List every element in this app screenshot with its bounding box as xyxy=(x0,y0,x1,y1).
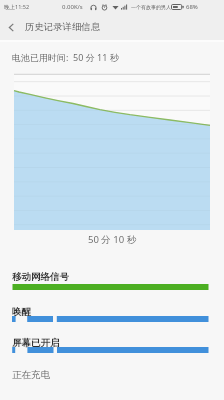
staticText: 唤醒 xyxy=(12,306,31,318)
staticText: 移动网络信号 xyxy=(12,271,69,283)
staticText: 晚上11:52 xyxy=(4,3,30,11)
staticText: 0.00K/s xyxy=(62,3,83,11)
button[interactable]: 屏幕已开启 xyxy=(0,347,224,353)
button[interactable]: 移动网络信号 xyxy=(0,284,224,290)
button[interactable]: 唤醒 xyxy=(0,316,224,322)
staticText: 68% xyxy=(186,3,198,11)
staticText: 正在充电 xyxy=(12,369,50,381)
button[interactable]: 返回 xyxy=(0,16,22,38)
staticText: 电池已用时间: 50 分 11 秒 xyxy=(12,51,119,63)
staticText: 屏幕已开启 xyxy=(12,337,60,349)
staticText: 一个有故事的男人 xyxy=(131,4,171,10)
staticText: 50 分 10 秒 xyxy=(88,233,137,246)
staticText: 历史记录详细信息 xyxy=(25,21,101,33)
